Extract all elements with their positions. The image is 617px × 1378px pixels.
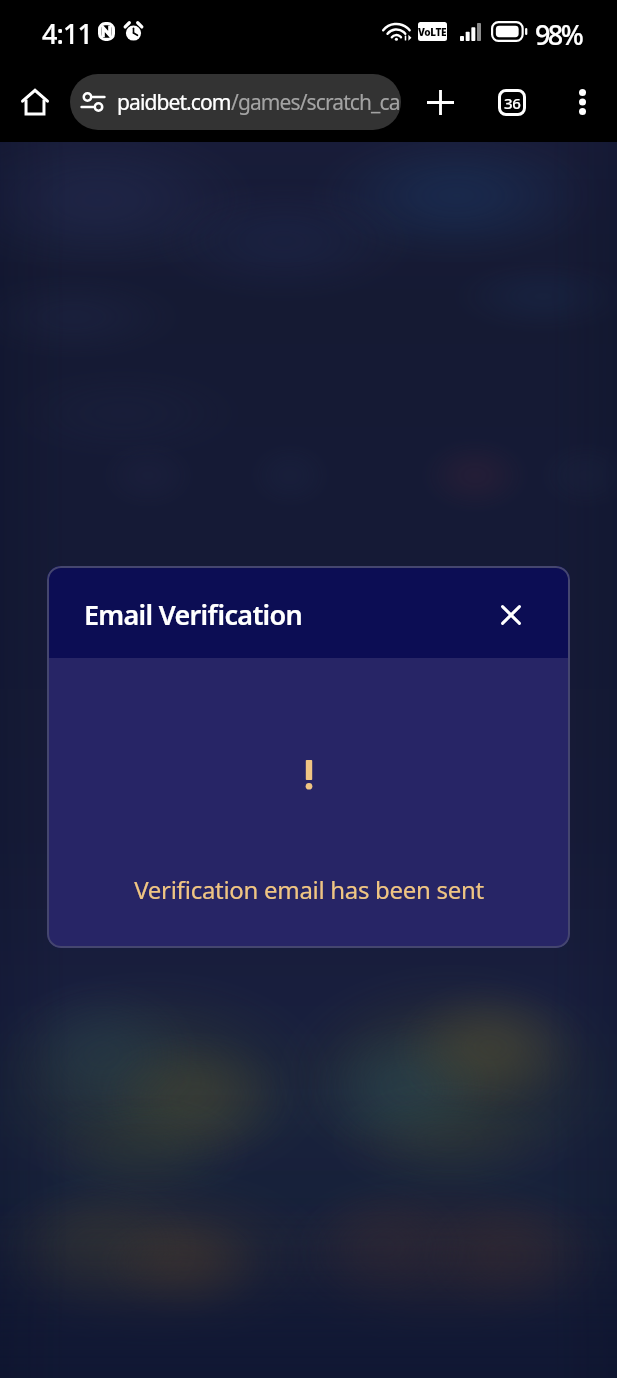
- button[interactable]: Tabs: [486, 76, 538, 128]
- button[interactable]: New tab: [414, 76, 466, 128]
- staticText: Email Verification: [84, 596, 302, 633]
- button[interactable]: Home: [9, 76, 61, 128]
- button[interactable]: Close: [492, 596, 530, 634]
- staticText: /games/scratch_ca: [231, 88, 399, 117]
- button[interactable]: More options: [556, 76, 608, 128]
- staticText: 36: [504, 93, 521, 113]
- staticText: 98%: [535, 16, 582, 53]
- staticText: paidbet.com: [117, 88, 231, 117]
- staticText: Verification email has been sent: [134, 873, 484, 906]
- staticText: VoLTE: [418, 25, 447, 39]
- button[interactable]: Search or type URL: [70, 74, 401, 130]
- staticText: 4:11: [42, 15, 93, 52]
